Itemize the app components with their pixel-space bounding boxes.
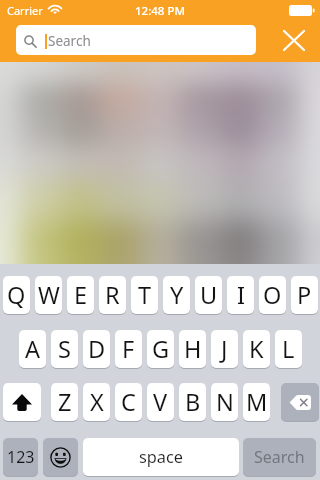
button[interactable]: D xyxy=(83,330,110,368)
staticText: T xyxy=(138,279,152,311)
staticText: Search xyxy=(254,446,305,468)
button[interactable]: Close search xyxy=(276,23,312,58)
button[interactable]: M xyxy=(243,383,270,421)
button[interactable]: A xyxy=(19,330,46,368)
staticText: H xyxy=(184,333,202,365)
staticText: B xyxy=(185,386,201,418)
staticText: O xyxy=(263,279,282,311)
staticText: G xyxy=(152,333,170,365)
staticText: W xyxy=(38,279,60,311)
button[interactable]: U xyxy=(195,276,222,314)
staticText: V xyxy=(153,386,168,418)
staticText: A xyxy=(25,333,41,365)
staticText: Z xyxy=(58,386,72,418)
button[interactable]: Y xyxy=(163,276,190,314)
button[interactable]: H xyxy=(179,330,206,368)
staticText: 123 xyxy=(7,446,35,468)
staticText: P xyxy=(297,279,312,311)
button[interactable]: F xyxy=(115,330,142,368)
button[interactable]: 123 xyxy=(3,438,38,476)
button[interactable]: Q xyxy=(3,276,30,314)
staticText: S xyxy=(58,333,71,365)
staticText: Carrier xyxy=(7,3,43,18)
button[interactable]: Search xyxy=(243,438,316,476)
staticText: N xyxy=(216,386,234,418)
staticText: M xyxy=(246,386,268,418)
button[interactable]: T xyxy=(131,276,158,314)
staticText: D xyxy=(88,333,106,365)
staticText: Y xyxy=(170,279,184,311)
staticText: J xyxy=(221,333,228,365)
button[interactable]: W xyxy=(35,276,62,314)
staticText: space xyxy=(139,446,183,468)
button[interactable]: I xyxy=(227,276,254,314)
staticText: U xyxy=(200,279,218,311)
button[interactable]: Z xyxy=(51,383,78,421)
staticText: I xyxy=(237,279,245,311)
button[interactable]: J xyxy=(211,330,238,368)
staticText: 12:48 PM xyxy=(0,3,320,19)
staticText: F xyxy=(122,333,135,365)
button[interactable]: B xyxy=(179,383,206,421)
button[interactable]: L xyxy=(275,330,302,368)
button[interactable]: Backspace xyxy=(281,383,319,421)
staticText: Q xyxy=(7,279,26,311)
button[interactable]: S xyxy=(51,330,78,368)
button[interactable]: N xyxy=(211,383,238,421)
button[interactable]: G xyxy=(147,330,174,368)
staticText: E xyxy=(74,279,88,311)
button[interactable]: space xyxy=(83,438,239,476)
staticText: X xyxy=(90,386,104,418)
button[interactable]: O xyxy=(259,276,286,314)
staticText: K xyxy=(249,333,264,365)
staticText: R xyxy=(105,279,120,311)
button[interactable]: Emoji xyxy=(43,438,78,476)
button[interactable]: X xyxy=(83,383,110,421)
button[interactable]: E xyxy=(67,276,94,314)
button[interactable]: R xyxy=(99,276,126,314)
staticText: L xyxy=(282,333,295,365)
button[interactable]: P xyxy=(291,276,318,314)
button[interactable]: Search xyxy=(16,25,256,55)
button[interactable]: K xyxy=(243,330,270,368)
button[interactable]: V xyxy=(147,383,174,421)
button[interactable]: C xyxy=(115,383,142,421)
staticText: Search xyxy=(48,32,91,50)
button[interactable]: Shift xyxy=(3,383,41,421)
staticText: C xyxy=(121,386,136,418)
